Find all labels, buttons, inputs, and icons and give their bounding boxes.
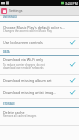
staticText: DATA xyxy=(3,50,10,54)
button[interactable] xyxy=(0,37,79,49)
staticText: Download missing album art xyxy=(3,78,68,83)
staticText: Changes the accent color in Music Play xyxy=(3,29,73,33)
button[interactable] xyxy=(0,21,79,37)
staticText: Download via Wi-Fi only xyxy=(3,57,68,62)
staticText: STORAGE xyxy=(3,102,15,106)
staticText: Choose Music Play's default color s... xyxy=(3,25,73,30)
button[interactable]: Toggle setting xyxy=(69,89,76,96)
button[interactable]: Toggle setting xyxy=(69,39,76,46)
button[interactable]: Toggle setting xyxy=(69,77,76,84)
staticText: Remove all cached images xyxy=(3,114,73,118)
button[interactable]: Settings xyxy=(0,6,79,15)
staticText: To reduce carrier charges, do not xyxy=(3,63,68,67)
staticText: Delete cache xyxy=(3,110,73,115)
staticText: Download missing artist imag... xyxy=(3,90,68,95)
button[interactable] xyxy=(0,87,79,99)
staticText: 3:24 PM xyxy=(65,1,78,6)
staticText: download over mobile networks xyxy=(3,66,68,70)
button[interactable] xyxy=(0,55,79,74)
button[interactable] xyxy=(0,107,79,125)
button[interactable] xyxy=(0,74,79,87)
staticText: Settings xyxy=(9,8,23,13)
staticText: Use lockscreen controls xyxy=(3,40,68,45)
button[interactable]: Toggle setting xyxy=(69,61,76,68)
staticText: INTERFACE xyxy=(3,15,18,19)
